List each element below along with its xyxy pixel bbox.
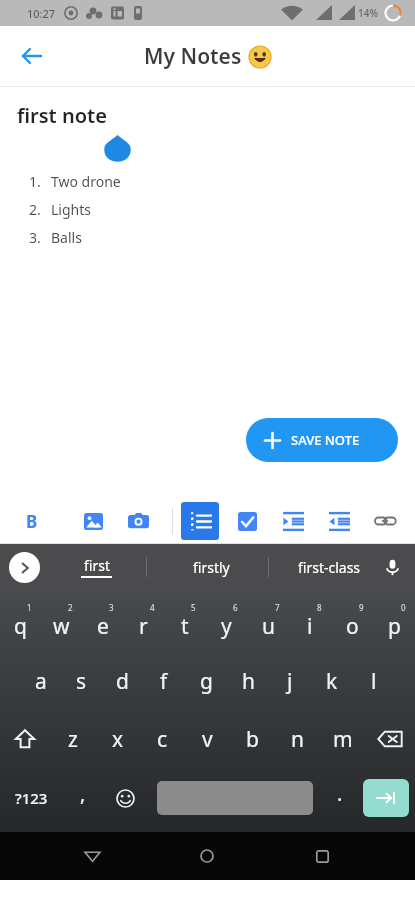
staticText: c: [157, 725, 168, 754]
staticText: 4: [150, 602, 155, 613]
staticText: 14%: [358, 6, 378, 20]
staticText: j: [287, 667, 293, 696]
button[interactable]: 8: [289, 590, 331, 652]
button[interactable]: Insert image: [74, 502, 112, 540]
staticText: first-class: [298, 558, 361, 577]
staticText: e: [97, 612, 109, 641]
staticText: 9: [359, 602, 364, 613]
staticText: t: [181, 612, 189, 641]
button[interactable]: j: [269, 652, 311, 710]
staticText: b: [246, 725, 259, 754]
button[interactable]: z: [50, 710, 95, 768]
button[interactable]: .: [323, 768, 357, 828]
button[interactable]: 1: [0, 590, 41, 652]
button[interactable]: Back: [70, 834, 114, 878]
button[interactable]: Checklist: [228, 502, 266, 540]
staticText: 0: [401, 602, 406, 613]
staticText: 7: [275, 602, 280, 613]
button[interactable]: g: [185, 652, 227, 710]
staticText: first: [84, 556, 110, 575]
button[interactable]: x: [95, 710, 140, 768]
button[interactable]: Voice input: [375, 550, 409, 584]
staticText: Balls: [51, 228, 82, 247]
staticText: My Notes: [144, 42, 247, 71]
staticText: o: [346, 612, 359, 641]
staticText: n: [291, 725, 304, 754]
staticText: first note: [17, 102, 107, 129]
button[interactable]: v: [185, 710, 230, 768]
staticText: a: [35, 667, 47, 696]
button[interactable]: ?123: [0, 768, 63, 828]
button[interactable]: 9: [331, 590, 373, 652]
staticText: l: [371, 667, 377, 696]
button[interactable]: Expand suggestions: [9, 552, 40, 583]
button[interactable]: 2: [41, 590, 82, 652]
button[interactable]: 4: [123, 590, 164, 652]
button[interactable]: Insert link: [366, 502, 404, 540]
button[interactable]: Back: [10, 34, 54, 78]
staticText: x: [112, 725, 124, 754]
staticText: w: [53, 612, 70, 641]
button[interactable]: SAVE NOTE: [246, 418, 398, 462]
button[interactable]: d: [102, 652, 143, 710]
button[interactable]: 7: [247, 590, 289, 652]
staticText: SAVE NOTE: [291, 431, 360, 449]
button[interactable]: f: [143, 652, 185, 710]
staticText: d: [116, 667, 129, 696]
button[interactable]: Emoji: [103, 768, 147, 828]
button[interactable]: Shift: [0, 710, 50, 768]
staticText: u: [262, 612, 275, 641]
staticText: r: [139, 612, 148, 641]
staticText: 2.: [29, 200, 51, 219]
staticText: 3.: [29, 228, 51, 247]
staticText: z: [68, 725, 78, 754]
button[interactable]: Space: [157, 781, 313, 815]
staticText: m: [333, 725, 353, 754]
button[interactable]: h: [227, 652, 269, 710]
button[interactable]: Backspace: [365, 710, 415, 768]
button[interactable]: c: [140, 710, 185, 768]
staticText: .: [337, 780, 343, 807]
staticText: ?123: [15, 788, 48, 808]
button[interactable]: first: [60, 547, 132, 587]
staticText: v: [202, 725, 213, 754]
button[interactable]: Enter: [363, 779, 409, 817]
staticText: p: [388, 612, 401, 641]
button[interactable]: Decrease indent: [320, 502, 358, 540]
button[interactable]: l: [353, 652, 395, 710]
button[interactable]: Numbered list: [181, 502, 219, 540]
button[interactable]: Camera: [119, 502, 157, 540]
button[interactable]: B: [13, 502, 51, 540]
button[interactable]: firstly: [172, 547, 250, 587]
staticText: 5: [191, 602, 196, 613]
button[interactable]: Increase indent: [274, 502, 312, 540]
button[interactable]: b: [230, 710, 275, 768]
staticText: B: [26, 510, 38, 533]
button[interactable]: n: [275, 710, 320, 768]
staticText: 6: [233, 602, 238, 613]
staticText: 3: [109, 602, 114, 613]
staticText: k: [326, 667, 338, 696]
staticText: Lights: [51, 200, 91, 219]
staticText: f: [160, 667, 168, 696]
button[interactable]: 0: [373, 590, 415, 652]
staticText: y: [221, 612, 232, 641]
button[interactable]: Home: [185, 834, 229, 878]
staticText: q: [14, 612, 27, 641]
button[interactable]: k: [311, 652, 353, 710]
staticText: g: [200, 667, 213, 696]
staticText: 8: [317, 602, 322, 613]
button[interactable]: Recent apps: [300, 834, 344, 878]
staticText: s: [76, 667, 87, 696]
button[interactable]: first-class: [285, 547, 373, 587]
button[interactable]: s: [61, 652, 102, 710]
button[interactable]: 5: [164, 590, 205, 652]
button[interactable]: 3: [82, 590, 123, 652]
button[interactable]: a: [20, 652, 61, 710]
button[interactable]: ,: [63, 768, 103, 828]
button[interactable]: 6: [205, 590, 247, 652]
staticText: ,: [80, 780, 86, 807]
button[interactable]: m: [320, 710, 365, 768]
staticText: 10:27: [27, 6, 56, 21]
staticText: firstly: [193, 558, 230, 577]
